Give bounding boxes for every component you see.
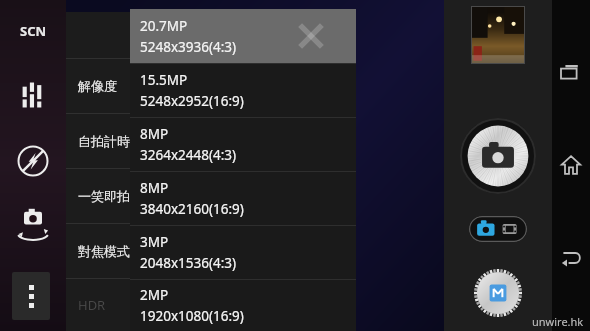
staticText: 20.7MP	[140, 17, 188, 35]
staticText: 3MP	[140, 233, 169, 251]
staticText: SCN	[20, 22, 47, 40]
staticText: 15.5MP	[140, 71, 188, 89]
staticText: 解像度	[78, 78, 117, 94]
staticText: 3264x2448(4:3)	[140, 146, 237, 164]
button[interactable]: Recent apps	[554, 56, 588, 90]
button[interactable]: 3MP	[130, 225, 356, 279]
staticText: 2MP	[140, 286, 169, 304]
button[interactable]: 20.7MP	[130, 9, 356, 63]
button[interactable]: Last photo	[472, 7, 524, 63]
button[interactable]: Manual mode	[473, 268, 523, 318]
staticText: 5248x2952(16:9)	[140, 92, 244, 110]
button[interactable]: 8MP	[130, 117, 356, 171]
staticText: 8MP	[140, 125, 169, 143]
button[interactable]: 15.5MP	[130, 63, 356, 117]
button[interactable]: Photo video mode	[469, 216, 527, 242]
button[interactable]: 8MP	[130, 171, 356, 225]
button[interactable]: 對焦模式	[66, 224, 356, 278]
staticText: 5248x3936(4:3)	[140, 38, 237, 56]
button[interactable]: Scene mode	[11, 18, 55, 44]
button[interactable]: Back	[554, 240, 588, 274]
staticText: unwire.hk	[532, 314, 584, 329]
button[interactable]: Home	[554, 148, 588, 182]
staticText: 自拍計時器	[78, 133, 143, 149]
staticText: HDR	[78, 296, 106, 314]
staticText: 對焦模式	[78, 243, 130, 259]
staticText: 一笑即拍	[78, 188, 130, 204]
staticText: 2048x1536(4:3)	[140, 254, 237, 272]
staticText: 8MP	[140, 179, 169, 197]
button[interactable]: More options	[12, 272, 50, 320]
button[interactable]: 自拍計時器	[66, 114, 356, 168]
button[interactable]: 2MP	[130, 279, 356, 331]
button[interactable]: Flash off	[12, 140, 54, 182]
button[interactable]: Switch camera	[10, 205, 56, 245]
staticText: 1920x1080(16:9)	[140, 307, 244, 325]
button[interactable]: 一笑即拍	[66, 169, 356, 223]
button[interactable]: Adjust settings	[12, 78, 54, 112]
button[interactable]: HDR	[66, 279, 356, 331]
button[interactable]: 解像度	[66, 59, 356, 113]
staticText: 3840x2160(16:9)	[140, 200, 244, 218]
button[interactable]: Shutter	[460, 118, 536, 194]
